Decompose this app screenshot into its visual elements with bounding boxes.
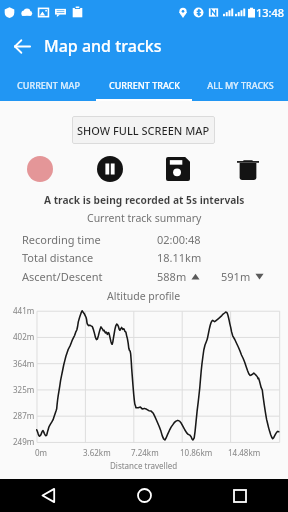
button[interactable]: CURRENT TRACK [96, 68, 192, 101]
staticText: 441m [13, 305, 35, 316]
staticText: 402m [13, 331, 35, 342]
button[interactable]: CURRENT MAP [0, 68, 96, 101]
button[interactable]: Pause recording [97, 156, 123, 182]
staticText: 0m [35, 447, 48, 458]
staticText: 588m [157, 269, 187, 284]
button[interactable]: Recording [27, 156, 53, 182]
staticText: Recording time [22, 232, 101, 247]
staticText: Distance travelled [110, 460, 178, 471]
button[interactable]: SHOW FULL SCREEN MAP [72, 116, 215, 144]
staticText: 14.48km [228, 447, 261, 458]
staticText: 287m [13, 410, 35, 421]
staticText: Altitude profile [107, 289, 181, 303]
button[interactable]: Recent apps [192, 479, 288, 512]
staticText: CURRENT MAP [17, 79, 80, 91]
button[interactable]: Save track [165, 156, 191, 182]
button[interactable]: Delete track [235, 156, 261, 182]
button[interactable]: ALL MY TRACKS [192, 68, 288, 101]
staticText: 10.86km [180, 447, 213, 458]
staticText: 3.62km [83, 447, 111, 458]
staticText: ALL MY TRACKS [207, 79, 274, 91]
staticText: 18.11km [157, 250, 202, 265]
staticText: A track is being recorded at 5s interval… [44, 193, 245, 207]
staticText: 7.24km [131, 447, 159, 458]
staticText: SHOW FULL SCREEN MAP [77, 123, 210, 138]
staticText: CURRENT TRACK [109, 79, 180, 91]
staticText: 13:48 [256, 5, 285, 20]
staticText: Total distance [22, 250, 94, 265]
staticText: Map and tracks [44, 35, 162, 57]
staticText: Ascent/Descent [22, 269, 103, 284]
staticText: Current track summary [87, 211, 202, 225]
staticText: 325m [13, 384, 35, 395]
button[interactable]: Home [96, 479, 192, 512]
staticText: 591m [221, 269, 251, 284]
button[interactable]: Navigate up [0, 24, 44, 68]
staticText: 249m [13, 436, 35, 447]
button[interactable]: Back [0, 479, 96, 512]
staticText: 364m [13, 358, 35, 369]
staticText: 02:00:48 [157, 232, 201, 247]
